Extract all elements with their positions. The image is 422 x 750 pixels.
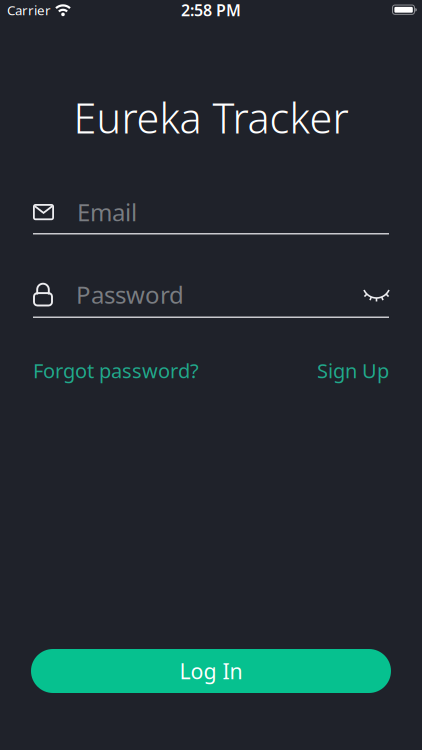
button[interactable]: Log In [31, 649, 391, 693]
staticText: Password [76, 279, 184, 310]
button[interactable] [364, 287, 389, 302]
staticText: Carrier [7, 1, 51, 19]
staticText: 2:58 PM [181, 0, 241, 21]
button[interactable]: Sign Up [317, 357, 389, 384]
staticText: Forgot password? [33, 357, 199, 384]
staticText: Email [77, 196, 137, 228]
staticText: Sign Up [317, 357, 389, 384]
staticText: Log In [179, 657, 242, 685]
staticText: Eureka Tracker [73, 90, 348, 145]
button[interactable]: Forgot password? [33, 357, 199, 384]
